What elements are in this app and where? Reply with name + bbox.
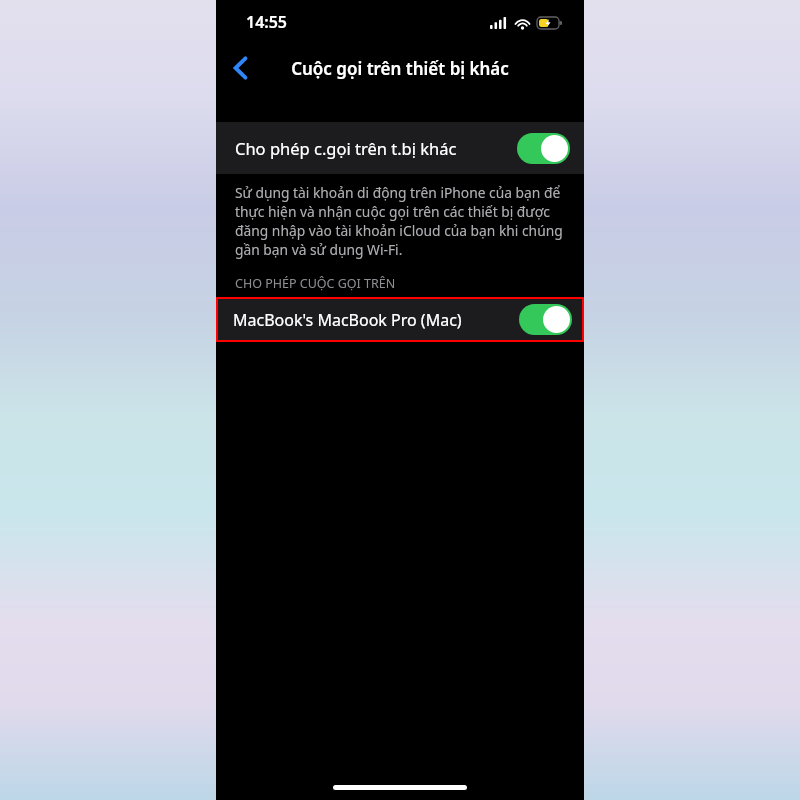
button[interactable]: Bật <box>519 304 572 335</box>
staticText: 14:55 <box>246 11 288 33</box>
staticText: Sử dụng tài khoản di động trên iPhone củ… <box>235 183 566 259</box>
button[interactable]: Bật <box>517 133 570 164</box>
button[interactable]: Cho phép c.gọi trên t.bị khác <box>216 122 584 174</box>
button[interactable]: MacBook's MacBook Pro (Mac) <box>216 297 584 342</box>
staticText: MacBook's MacBook Pro (Mac) <box>233 309 519 331</box>
staticText: Cuộc gọi trên thiết bị khác <box>291 57 509 80</box>
button[interactable]: Quay lại <box>216 44 264 92</box>
staticText: CHO PHÉP CUỘC GỌI TRÊN <box>235 275 584 292</box>
staticText: Cho phép c.gọi trên t.bị khác <box>235 137 517 159</box>
